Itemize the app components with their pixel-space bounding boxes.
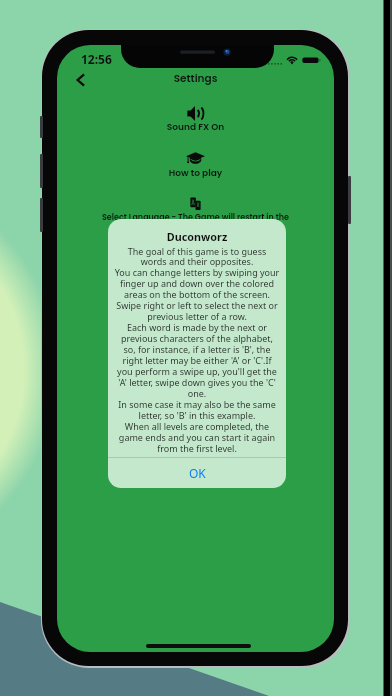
staticText: Sound FX On <box>57 121 334 134</box>
staticText: 12:56 <box>81 51 112 67</box>
staticText: Settings <box>57 71 334 86</box>
staticText: How to play <box>57 167 334 180</box>
button[interactable]: Select Language - The Game will restart … <box>57 197 334 223</box>
button[interactable]: How to play <box>57 152 334 180</box>
staticText: Duconworz <box>108 229 286 244</box>
staticText: The goal of this game is to guess words … <box>110 245 284 455</box>
staticText: OK <box>189 465 206 481</box>
staticText: Select Language - The Game will restart … <box>57 212 334 223</box>
button[interactable]: Sound FX On <box>57 106 334 134</box>
button[interactable]: Back <box>69 68 93 92</box>
button[interactable]: OK <box>108 457 286 488</box>
